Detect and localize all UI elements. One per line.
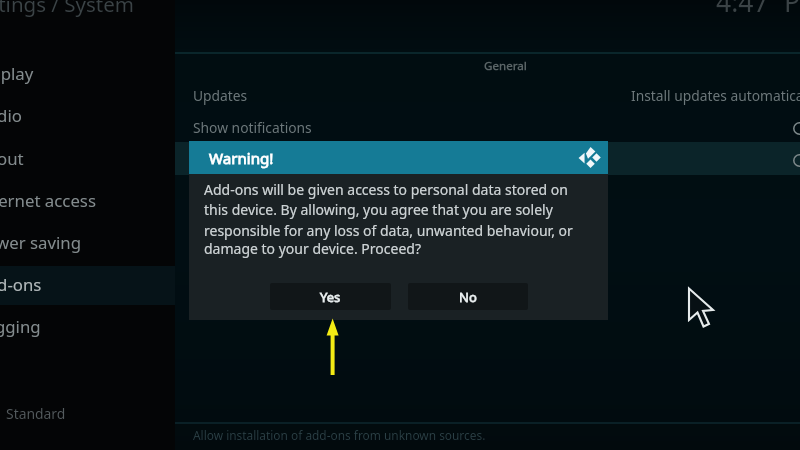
staticText: responsible for any loss of data, unwant… <box>204 221 573 240</box>
button[interactable] <box>175 142 800 175</box>
staticText: Yes <box>320 288 341 306</box>
staticText: Settings / System <box>0 0 134 18</box>
button[interactable]: Display <box>0 50 175 90</box>
button[interactable]: Logging <box>0 303 175 343</box>
button[interactable]: Toggle setting <box>793 122 800 135</box>
staticText: this device. By allowing, you agree that… <box>204 200 553 219</box>
staticText: damage to your device. Proceed? <box>204 239 421 258</box>
staticText: PM <box>784 0 800 20</box>
other: Kodi <box>578 146 601 168</box>
staticText: Show notifications <box>193 118 312 137</box>
button[interactable]: Power saving <box>0 219 175 259</box>
staticText: Logging <box>0 315 41 338</box>
button[interactable]: Internet access <box>0 177 175 217</box>
staticText: Updates <box>193 86 248 105</box>
staticText: 4:47 <box>716 0 769 20</box>
button[interactable]: Toggle setting <box>793 154 800 167</box>
staticText: About <box>0 147 24 170</box>
staticText: Allow installation of add-ons from unkno… <box>193 427 486 443</box>
staticText: Display <box>0 62 34 85</box>
button[interactable]: About <box>0 135 175 175</box>
button[interactable]: Audio <box>0 92 175 132</box>
button[interactable]: Standard <box>0 400 175 432</box>
staticText: Add-ons <box>0 273 42 296</box>
button[interactable]: Add-ons <box>0 261 175 301</box>
button[interactable]: No <box>408 283 528 310</box>
staticText: Warning! <box>209 148 274 169</box>
staticText: Power saving <box>0 231 82 254</box>
staticText: Install updates automatically <box>631 86 800 105</box>
staticText: General <box>484 58 527 74</box>
button[interactable]: Show notifications <box>175 116 800 148</box>
staticText: Standard <box>6 404 66 423</box>
staticText: Add-ons will be given access to personal… <box>204 180 568 199</box>
staticText: Audio <box>0 104 22 127</box>
button[interactable]: Yes <box>270 283 391 310</box>
staticText: Internet access <box>0 189 96 212</box>
button[interactable]: Updates <box>175 84 800 116</box>
staticText: No <box>459 288 477 306</box>
